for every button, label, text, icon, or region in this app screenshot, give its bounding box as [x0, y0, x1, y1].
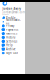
- button[interactable]: Privacy: [0, 24, 25, 28]
- staticText: Sign Out: [6, 51, 18, 55]
- staticText: History: [6, 36, 15, 39]
- button[interactable]: Archive: [0, 47, 25, 51]
- staticText: Help: [6, 43, 13, 47]
- button[interactable]: Favorites: [0, 32, 25, 35]
- staticText: Jordan Avery: [2, 7, 20, 10]
- staticText: jordan@mail.com: [2, 10, 24, 14]
- staticText: Privacy: [6, 24, 14, 27]
- button[interactable]: Payments: [0, 28, 25, 32]
- button[interactable]: Sign Out: [0, 51, 25, 55]
- staticText: Favorites: [6, 32, 17, 35]
- button[interactable]: Help: [0, 43, 25, 47]
- button[interactable]: Settings: [0, 39, 25, 43]
- staticText: ACCOUNT: [2, 14, 9, 15]
- staticText: Notifications: [6, 18, 21, 25]
- staticText: Settings: [6, 40, 17, 43]
- button[interactable]: History: [0, 35, 25, 39]
- staticText: Profile: [6, 16, 16, 20]
- staticText: Archive: [6, 47, 16, 51]
- button[interactable]: Profile: [0, 16, 25, 20]
- staticText: Payments: [6, 28, 18, 31]
- button[interactable]: Notifications: [0, 20, 25, 24]
